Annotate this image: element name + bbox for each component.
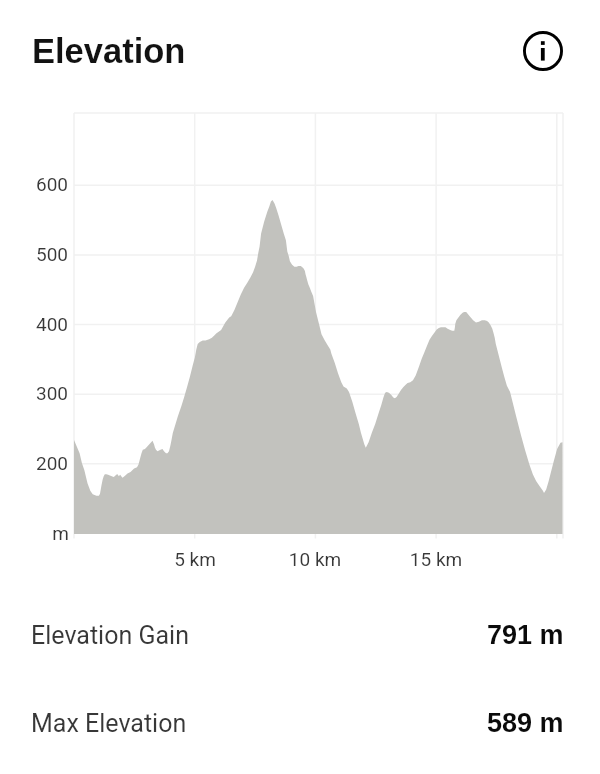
staticText: 10 km xyxy=(255,548,375,570)
staticText: 5 km xyxy=(135,548,255,570)
button[interactable]: Elevation Gain xyxy=(0,591,600,679)
staticText: 791 m xyxy=(487,620,564,650)
staticText: 200 xyxy=(0,452,68,474)
button[interactable]: Info xyxy=(519,27,567,75)
staticText: 400 xyxy=(0,313,68,335)
staticText: m xyxy=(0,522,69,544)
staticText: 589 m xyxy=(487,708,564,738)
staticText: Elevation xyxy=(32,32,186,71)
button[interactable]: Max Elevation xyxy=(0,679,600,767)
staticText: 500 xyxy=(0,243,68,265)
staticText: Elevation Gain xyxy=(31,621,189,650)
staticText: 15 km xyxy=(376,548,496,570)
staticText: Max Elevation xyxy=(31,709,187,738)
staticText: 600 xyxy=(0,173,68,195)
staticText: 300 xyxy=(0,382,68,404)
